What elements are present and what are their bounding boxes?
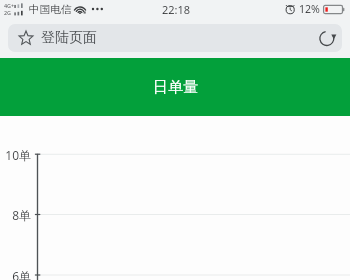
button[interactable]: Refresh	[313, 24, 341, 52]
staticText: 中国电信	[29, 3, 72, 16]
staticText: 日单量	[153, 78, 198, 97]
button[interactable]: 登陆页面	[8, 24, 342, 52]
staticText: 8单	[12, 207, 31, 223]
staticText: 10单	[5, 147, 31, 163]
staticText: 4G+	[4, 2, 15, 9]
staticText: 12%	[299, 2, 320, 16]
staticText: 6单	[12, 268, 31, 280]
button[interactable]: 日单量	[0, 58, 350, 116]
staticText: 登陆页面	[41, 29, 97, 47]
staticText: 2G	[4, 9, 12, 16]
staticText: 22:18	[162, 2, 191, 17]
